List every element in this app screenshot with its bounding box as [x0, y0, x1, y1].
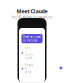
staticText: Your AI assistant for everything — [11, 15, 52, 19]
staticText: Meet Claude — [16, 8, 47, 15]
staticText: Draft an email to my team — [23, 35, 41, 42]
staticText: Sure — here's a draft — [25, 46, 33, 60]
staticText: Ready to send — [25, 63, 33, 74]
